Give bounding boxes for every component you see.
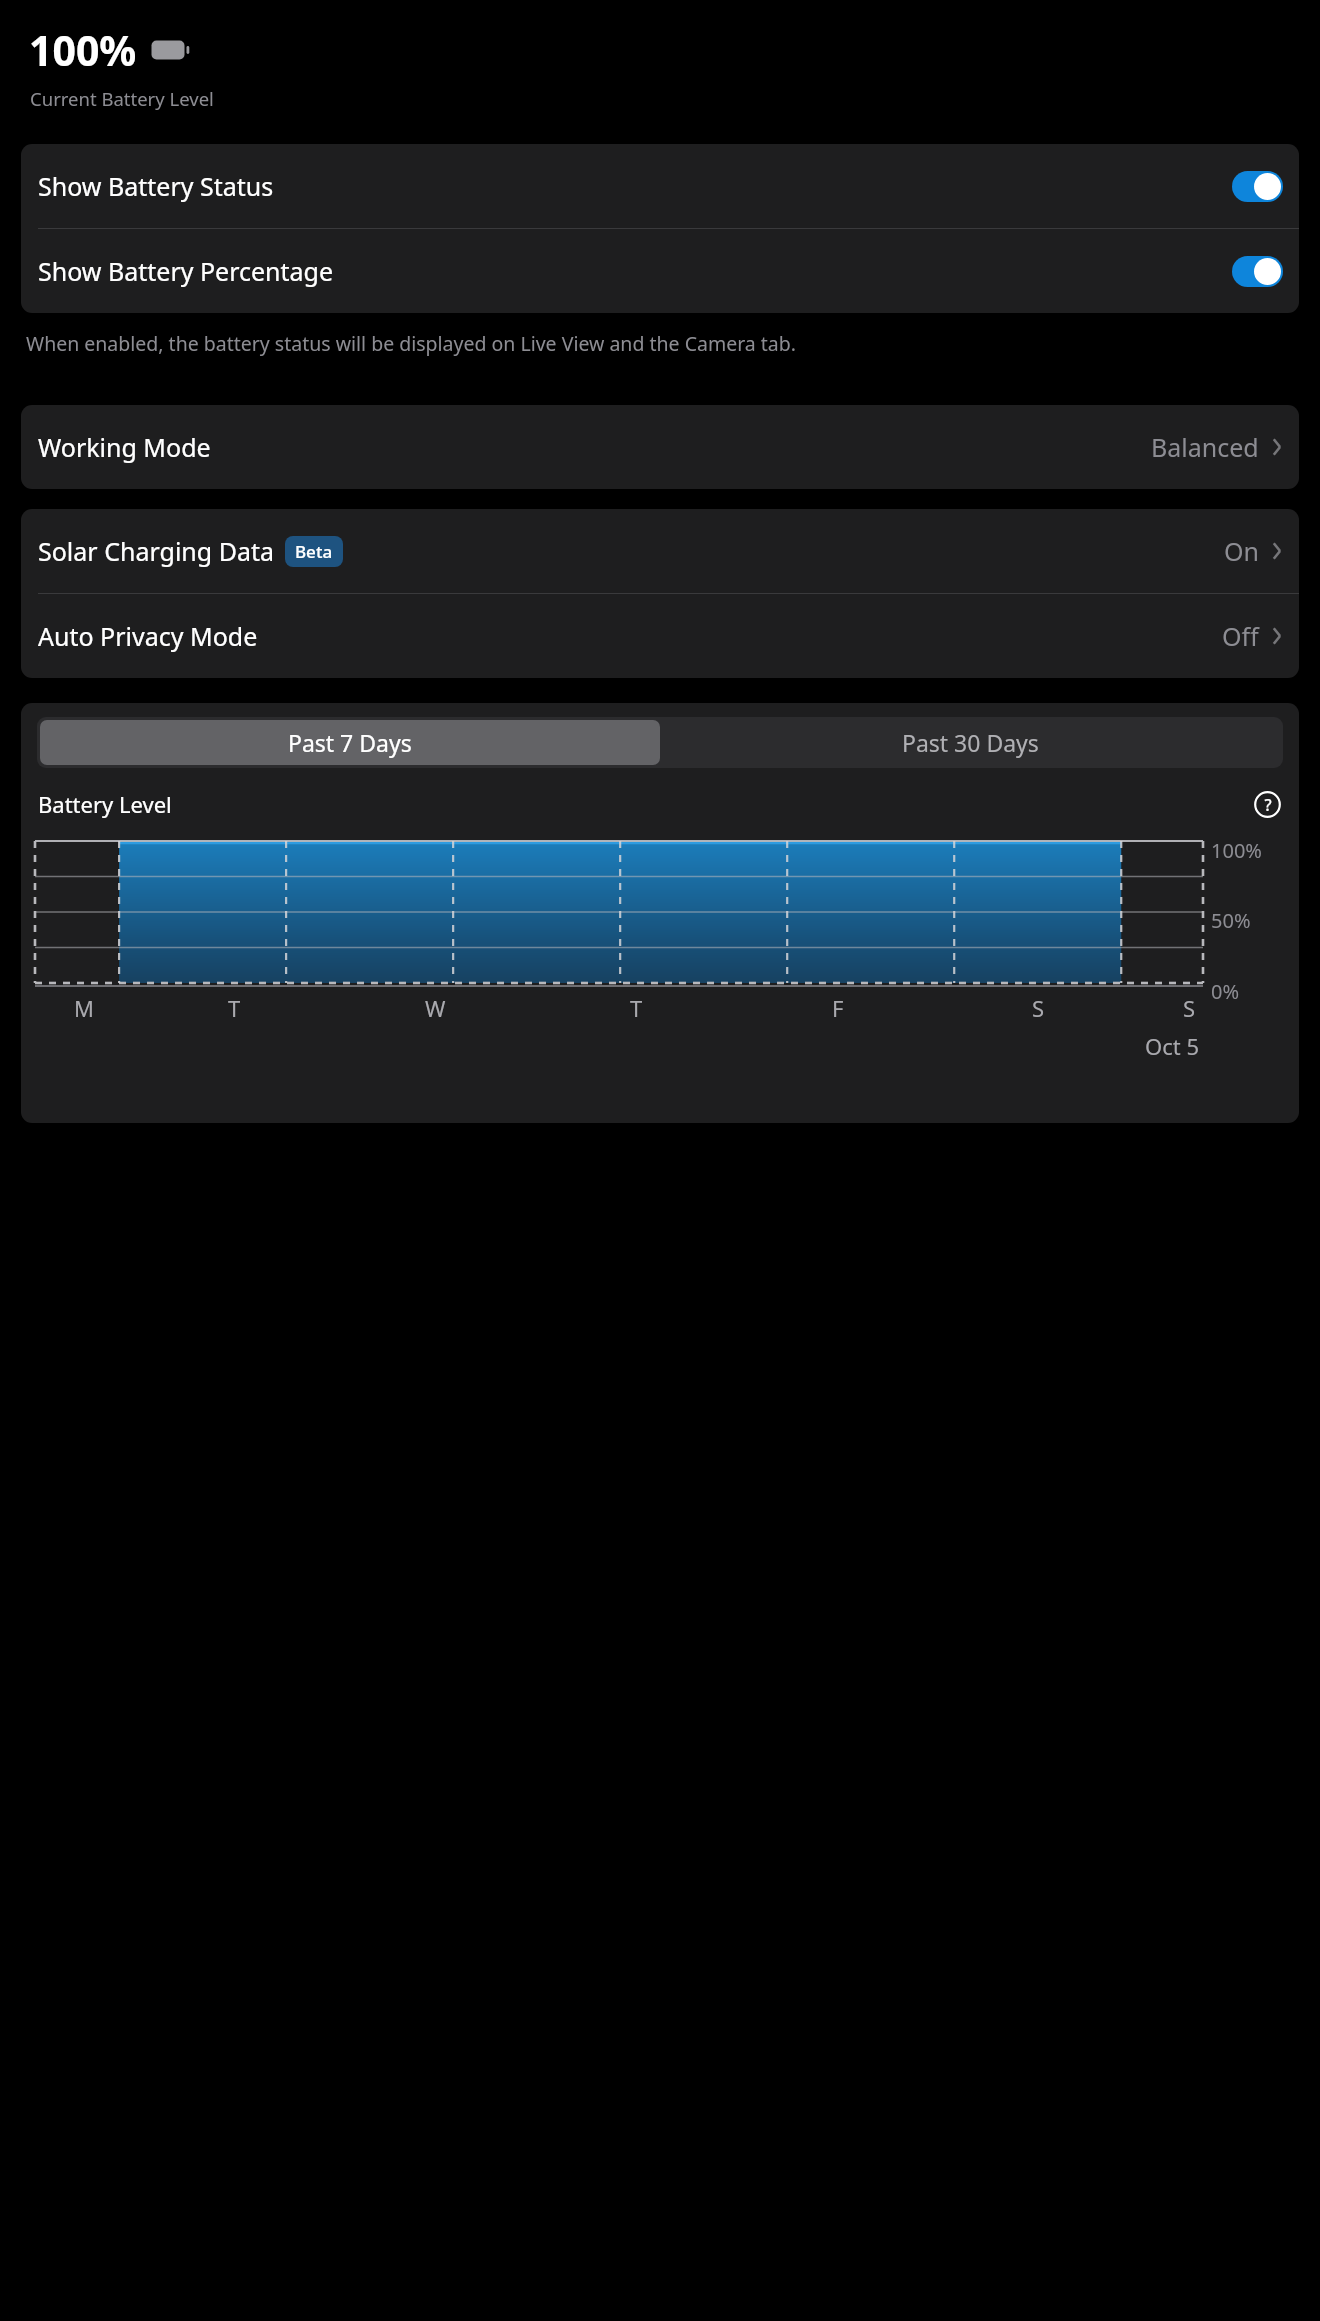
staticText: Off <box>1222 619 1259 653</box>
staticText: Oct 5 <box>1145 1031 1199 1061</box>
staticText: T <box>228 993 241 1023</box>
staticText: T <box>630 993 643 1023</box>
staticText: Current Battery Level <box>30 86 214 111</box>
button[interactable]: Past 7 Days <box>40 720 660 765</box>
staticText: Balanced <box>1151 430 1259 464</box>
staticText: M <box>74 993 94 1023</box>
staticText: S <box>1032 993 1045 1023</box>
staticText: Working Mode <box>38 430 211 464</box>
other: On <box>1232 171 1283 202</box>
staticText: Solar Charging Data <box>38 534 274 568</box>
staticText: S <box>1183 993 1196 1023</box>
staticText: Beta <box>295 540 333 563</box>
button[interactable]: Show Battery Percentage <box>21 229 1299 313</box>
staticText: When enabled, the battery status will be… <box>26 330 796 357</box>
button[interactable]: Help <box>1254 791 1281 818</box>
other: On <box>1232 256 1283 287</box>
staticText: Show Battery Status <box>38 169 274 203</box>
button[interactable]: Past 30 Days <box>660 720 1280 765</box>
staticText: 100% <box>1211 837 1262 864</box>
staticText: Auto Privacy Mode <box>38 619 258 653</box>
button[interactable]: Working Mode <box>21 405 1299 489</box>
staticText: 0% <box>1211 978 1240 1005</box>
staticText: 50% <box>1211 907 1251 934</box>
staticText: On <box>1224 534 1259 568</box>
staticText: ? <box>1264 794 1272 816</box>
staticText: F <box>832 993 844 1023</box>
staticText: 100% <box>29 22 137 78</box>
staticText: Past 30 Days <box>902 727 1039 758</box>
staticText: Show Battery Percentage <box>38 254 334 288</box>
button[interactable]: Solar Charging Data <box>21 509 1299 593</box>
staticText: W <box>425 993 446 1023</box>
staticText: Battery Level <box>38 789 172 819</box>
button[interactable]: Show Battery Status <box>21 144 1299 228</box>
staticText: Past 7 Days <box>288 727 412 758</box>
button[interactable]: Auto Privacy Mode <box>21 594 1299 678</box>
